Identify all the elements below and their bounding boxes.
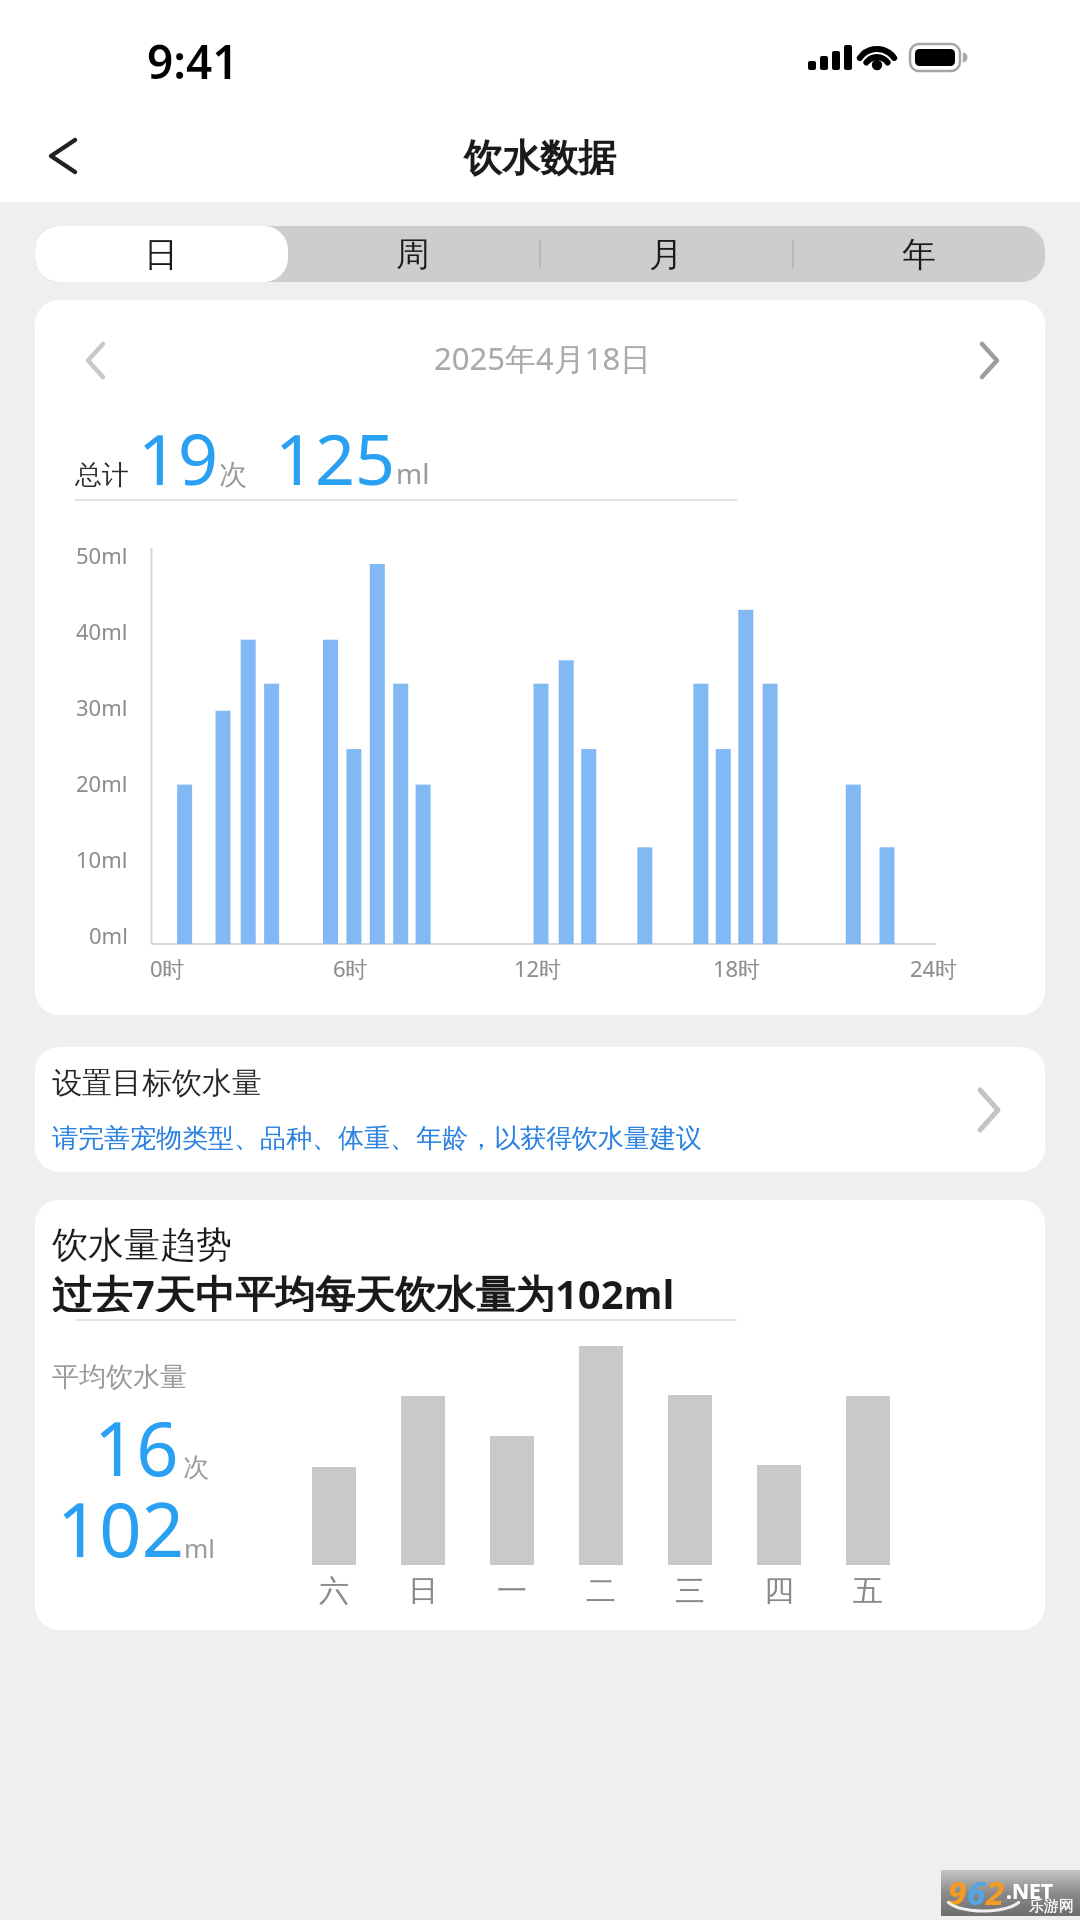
button[interactable]: 周 <box>287 226 539 282</box>
staticText: 9 <box>948 1870 967 1915</box>
staticText: 10ml <box>76 844 128 874</box>
staticText: 125 <box>275 410 396 505</box>
staticText: 月 <box>649 233 683 276</box>
staticText: .NET <box>1006 1877 1053 1906</box>
staticText: 饮水量趋势 <box>52 1222 232 1262</box>
staticText: 9:41 <box>147 30 239 86</box>
staticText: 日 <box>408 1572 438 1608</box>
button[interactable] <box>55 323 125 393</box>
staticText: 设置目标饮水量 <box>52 1064 262 1102</box>
staticText: 总计 <box>75 458 129 492</box>
button[interactable] <box>955 323 1025 393</box>
staticText: 日 <box>144 233 178 276</box>
button[interactable] <box>35 226 288 282</box>
staticText: 102 <box>57 1478 184 1579</box>
staticText: 五 <box>853 1572 883 1608</box>
button[interactable]: 设置目标饮水量 <box>35 1047 1045 1172</box>
staticText: 三 <box>675 1572 705 1608</box>
staticText: 请完善宠物类型、品种、体重、年龄，以获得饮水量建议 <box>52 1122 702 1155</box>
button[interactable]: 日 <box>35 226 287 282</box>
staticText: 30ml <box>76 692 128 722</box>
staticText: 六 <box>319 1572 349 1608</box>
staticText: 40ml <box>76 616 128 646</box>
staticText: 次 <box>183 1451 209 1484</box>
staticText: 20ml <box>76 768 128 798</box>
staticText: ml <box>396 454 430 492</box>
staticText: 2 <box>986 1870 1005 1915</box>
staticText: 饮水数据 <box>464 134 616 182</box>
staticText: 2025年4月18日 <box>434 337 652 379</box>
staticText: 周 <box>396 233 430 276</box>
button[interactable]: 年 <box>792 226 1045 282</box>
staticText: ml <box>184 1530 216 1565</box>
staticText: 24时 <box>910 953 958 983</box>
staticText: 乐游网 <box>1029 1897 1074 1916</box>
staticText: 次 <box>219 457 247 492</box>
staticText: 6 <box>967 1870 986 1915</box>
staticText: 16 <box>94 1397 179 1498</box>
button[interactable] <box>24 118 98 192</box>
staticText: 过去7天中平均每天饮水量为102ml <box>52 1266 675 1312</box>
staticText: 19 <box>138 410 219 505</box>
staticText: 6时 <box>333 953 368 983</box>
staticText: 年 <box>902 233 936 276</box>
staticText: 0ml <box>89 920 128 950</box>
staticText: 二 <box>586 1572 616 1608</box>
staticText: 一 <box>497 1572 527 1608</box>
button[interactable]: 月 <box>539 226 792 282</box>
staticText: 四 <box>764 1572 794 1608</box>
staticText: 平均饮水量 <box>52 1360 187 1394</box>
staticText: 18时 <box>713 953 761 983</box>
staticText: 50ml <box>76 540 128 570</box>
staticText: 12时 <box>514 953 562 983</box>
staticText: 0时 <box>150 953 185 983</box>
